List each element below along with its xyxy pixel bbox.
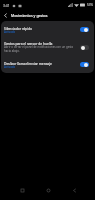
button[interactable]: Silenciador rápido <box>1 21 94 38</box>
button[interactable]: Activado <box>80 62 89 67</box>
button[interactable]: Activado <box>80 27 89 32</box>
button[interactable]: Recientes <box>14 183 30 197</box>
button[interactable]: Atrás <box>66 183 82 197</box>
button[interactable]: Deslizar llamar/enviar mensaje <box>1 56 94 73</box>
button[interactable]: Desactivado <box>80 45 89 50</box>
staticText: 53% <box>87 3 93 7</box>
staticText: Gestos para el sensor de huella <box>4 41 53 45</box>
staticText: Activado <box>4 30 16 34</box>
staticText: Movimientos y gestos <box>11 13 48 18</box>
button[interactable]: Gestos para el sensor de huella <box>1 38 94 56</box>
staticText: 3:41 <box>3 3 10 8</box>
staticText: Silenciador rápido <box>4 26 32 30</box>
button[interactable]: Back <box>0 10 11 21</box>
button[interactable]: Inicio <box>40 183 56 197</box>
staticText: Deslizar llamar/enviar mensaje <box>4 61 52 65</box>
staticText: Abrir o cerrar el panel de notificacione… <box>4 45 78 53</box>
staticText: Activado <box>4 65 16 69</box>
